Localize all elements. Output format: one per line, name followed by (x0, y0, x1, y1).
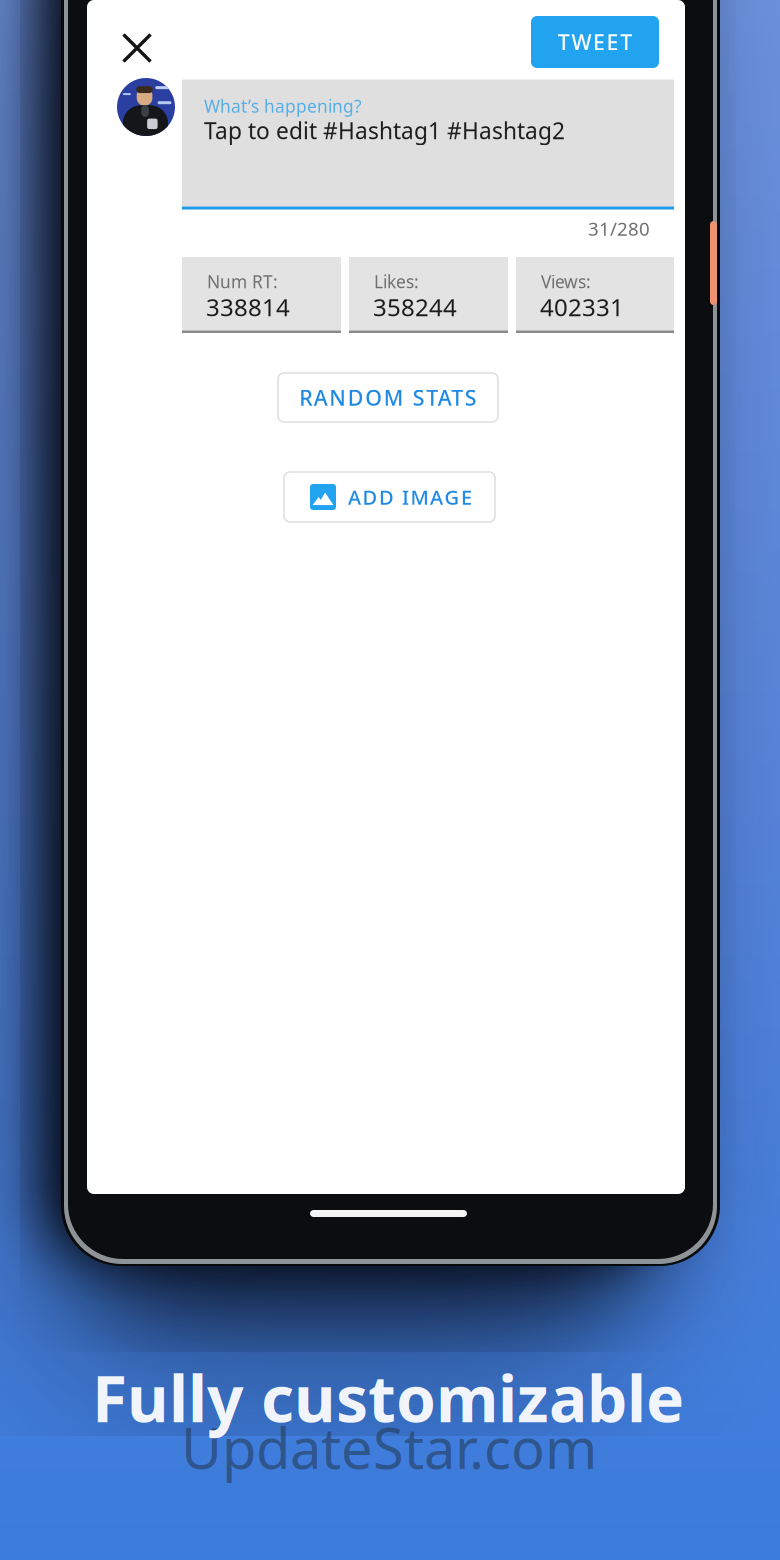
staticText: Likes: (374, 270, 419, 293)
button[interactable]: TWEET (531, 16, 659, 68)
staticText: Fully customizable (92, 1355, 684, 1440)
button[interactable]: ADD IMAGE (284, 472, 495, 522)
staticText: TWEET (558, 28, 632, 56)
staticText: RANDOM STATS (299, 383, 477, 412)
button[interactable]: RANDOM STATS (278, 373, 498, 422)
staticText: ADD IMAGE (348, 484, 472, 510)
staticText: 31/280 (588, 216, 650, 241)
staticText: 358244 (373, 291, 457, 323)
staticText: UpdateStar.com (181, 1410, 597, 1484)
staticText: Num RT: (207, 270, 278, 293)
staticText: 338814 (206, 291, 290, 323)
staticText: Tap to edit #Hashtag1 #Hashtag2 (204, 115, 565, 146)
staticText: 402331 (540, 291, 624, 323)
button[interactable]: Close (107, 18, 167, 78)
staticText: What’s happening? (204, 94, 362, 117)
staticText: Views: (541, 270, 591, 293)
